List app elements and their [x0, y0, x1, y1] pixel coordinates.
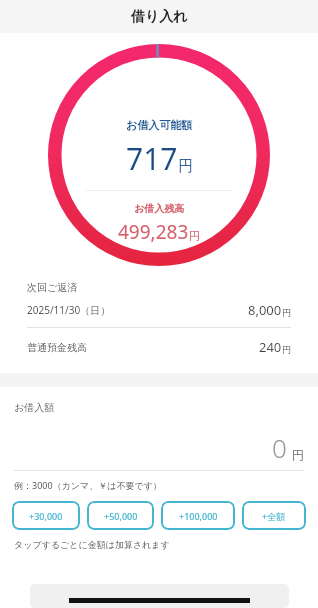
staticText: 借り入れ — [131, 8, 188, 26]
staticText: +全額 — [262, 510, 286, 522]
staticText: タップするごとに金額は加算されます — [14, 539, 170, 550]
button[interactable]: +全額 — [242, 501, 306, 530]
button[interactable]: +100,000 — [161, 501, 235, 530]
staticText: 円 — [282, 344, 291, 355]
staticText: +30,000 — [29, 510, 63, 522]
staticText: 円 — [292, 447, 304, 462]
staticText: お借入額 — [14, 401, 55, 414]
staticText: お借入残高 — [134, 202, 185, 215]
staticText: 240 — [259, 338, 282, 356]
staticText: +50,000 — [104, 510, 138, 522]
staticText: 717 — [126, 138, 178, 179]
staticText: お借入可能額 — [126, 118, 193, 132]
button[interactable]: +30,000 — [12, 501, 80, 530]
staticText: 次回ご返済 — [27, 281, 78, 294]
staticText: 例：3000（カンマ、￥は不要です） — [14, 479, 162, 491]
staticText: +100,000 — [179, 510, 218, 522]
staticText: 8,000 — [248, 301, 282, 319]
staticText: 円 — [189, 229, 200, 243]
staticText: 円 — [178, 157, 193, 176]
staticText: 普通預金残高 — [27, 341, 87, 354]
staticText: 499,283 — [118, 219, 189, 245]
button[interactable]: +50,000 — [87, 501, 154, 530]
staticText: 0 — [272, 430, 287, 465]
button[interactable]: 借りる — [30, 584, 289, 608]
staticText: 2025/11/30（日） — [27, 303, 111, 317]
staticText: 円 — [282, 307, 291, 318]
